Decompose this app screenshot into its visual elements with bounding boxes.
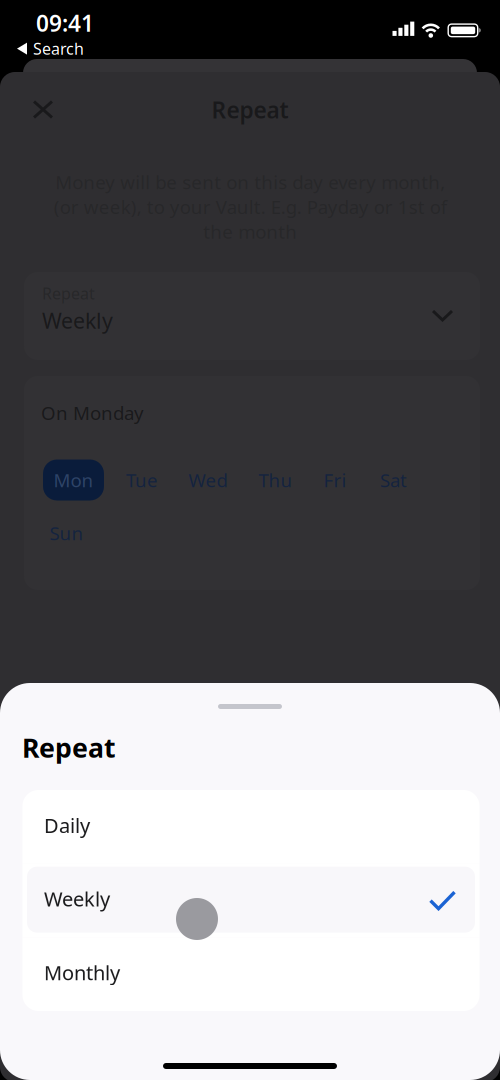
staticText: Repeat — [42, 283, 95, 304]
staticText: Mon — [53, 468, 93, 492]
button[interactable]: Close — [17, 83, 69, 135]
staticText: Repeat — [211, 94, 288, 125]
staticText: Fri — [323, 468, 346, 492]
button[interactable]: Sun — [37, 512, 96, 553]
button[interactable]: Fri — [311, 459, 359, 500]
button[interactable]: Mon — [43, 459, 104, 500]
button[interactable]: Thu — [246, 459, 305, 500]
button[interactable]: Sat — [364, 459, 423, 500]
staticText: Weekly — [42, 306, 113, 334]
staticText: Search — [33, 38, 84, 59]
button[interactable]: Search — [17, 38, 84, 59]
staticText: Weekly — [44, 886, 110, 912]
staticText: Monthly — [44, 959, 120, 986]
button[interactable]: Weekly — [22, 864, 479, 937]
staticText: 09:41 — [36, 8, 94, 38]
button[interactable]: Wed — [176, 459, 240, 500]
staticText: On Monday — [41, 400, 144, 425]
staticText: Wed — [188, 468, 227, 492]
staticText: Repeat — [22, 730, 116, 765]
staticText: Sat — [380, 468, 407, 492]
staticText: Daily — [44, 812, 90, 838]
button[interactable]: Tue — [112, 459, 172, 500]
staticText: Tue — [126, 468, 158, 492]
button[interactable]: Daily — [22, 790, 479, 864]
staticText: Sun — [49, 521, 83, 545]
button[interactable]: Monthly — [22, 937, 479, 1011]
staticText: Thu — [258, 468, 292, 492]
